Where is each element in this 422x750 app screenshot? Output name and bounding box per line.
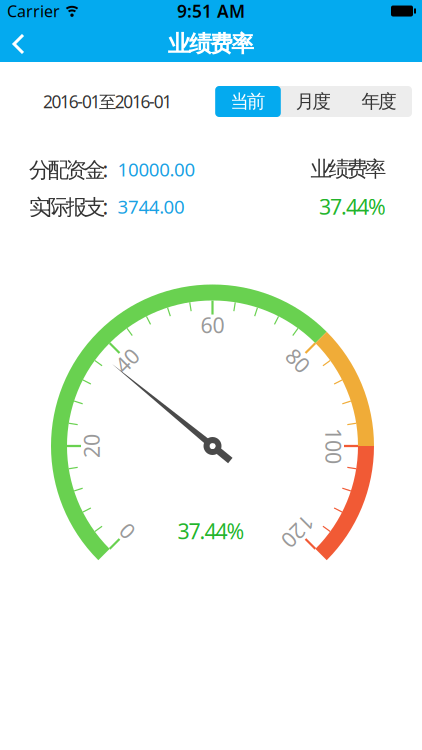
staticText: 80 [286, 346, 310, 375]
button[interactable]: 当前 [215, 86, 281, 117]
staticText: 120 [280, 517, 316, 546]
staticText: 实际报支: [29, 192, 109, 221]
button[interactable]: 年度 [346, 86, 412, 117]
staticText: 10000.00 [118, 157, 195, 182]
staticText: 月度 [296, 90, 331, 113]
staticText: 2016-01至2016-01 [43, 90, 172, 113]
staticText: 3744.00 [118, 194, 185, 219]
staticText: 分配资金: [29, 155, 109, 183]
staticText: 业绩费率 [310, 156, 386, 182]
staticText: 20 [79, 432, 103, 460]
staticText: 40 [115, 346, 139, 375]
staticText: 37.44% [177, 517, 244, 545]
staticText: 年度 [361, 90, 397, 113]
staticText: 37.44% [319, 192, 386, 221]
staticText: 当前 [230, 90, 266, 113]
staticText: 9:51 AM [177, 0, 245, 22]
button[interactable]: 月度 [281, 86, 346, 117]
staticText: 0 [121, 517, 133, 546]
staticText: Carrier [7, 0, 60, 22]
staticText: 100 [315, 432, 351, 460]
staticText: 60 [200, 311, 224, 339]
staticText: 业绩费率 [168, 30, 254, 58]
button[interactable]: Back [0, 22, 44, 62]
